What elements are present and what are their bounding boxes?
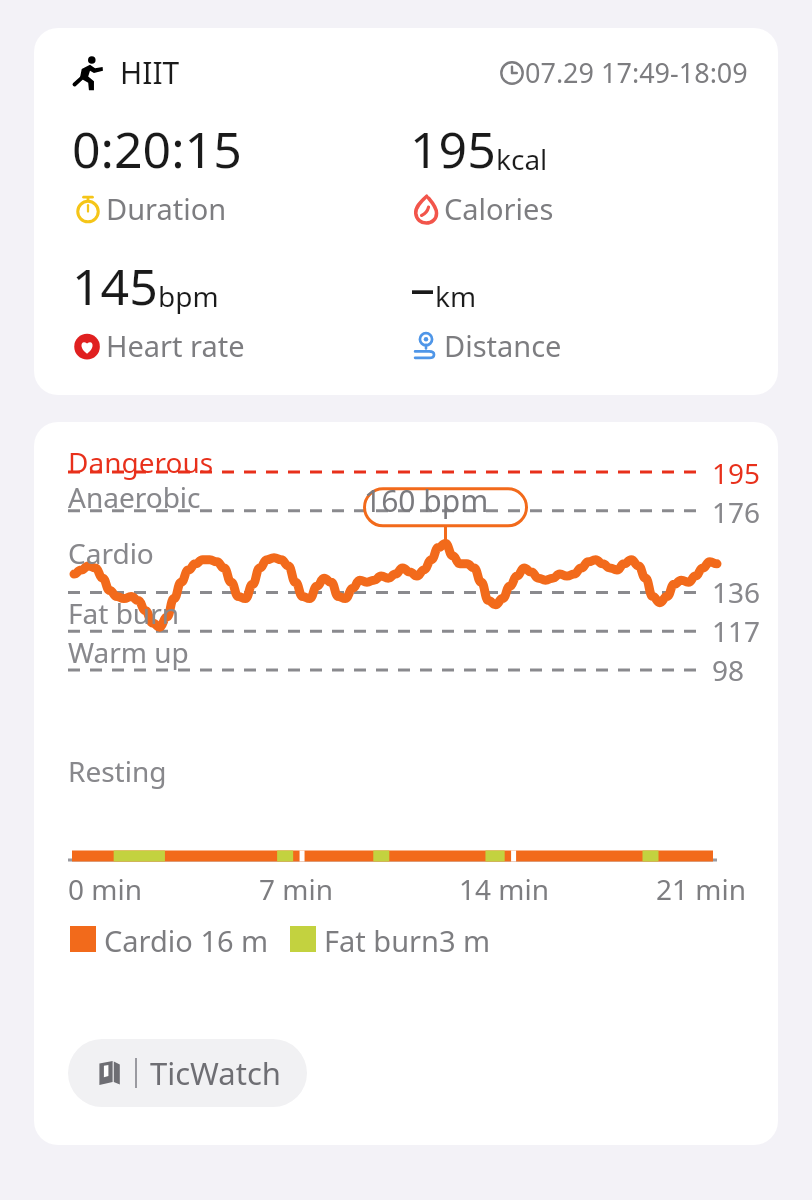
staticText: Calories [444, 189, 554, 228]
staticText: 176 [712, 493, 761, 531]
staticText: kcal [496, 140, 548, 178]
staticText: 07.29 17:49-18:09 [525, 54, 748, 91]
staticText: 160 bpm [364, 480, 489, 521]
button[interactable]: TicWatch [68, 1039, 307, 1107]
staticText: Fat burn [68, 594, 180, 632]
button[interactable]: 145 [72, 252, 410, 365]
staticText: Fat burn3 m [324, 921, 491, 960]
other: TicWatch [94, 1058, 124, 1088]
staticText: HIIT [120, 52, 180, 93]
staticText: 195 [410, 115, 496, 183]
staticText: 14 min [459, 870, 550, 908]
staticText: 145 [72, 252, 158, 320]
button[interactable]: 195 [410, 115, 748, 228]
staticText: Cardio 16 m [104, 921, 269, 960]
staticText: Anaerobic [68, 478, 201, 516]
staticText: Resting [68, 752, 167, 790]
staticText: 136 [712, 573, 761, 611]
staticText: – [410, 252, 435, 320]
other: HIIT workout [72, 55, 108, 91]
staticText: 0 min [68, 870, 143, 908]
staticText: 21 min [656, 870, 747, 908]
staticText: Warm up [68, 633, 189, 671]
staticText: 195 [712, 454, 761, 492]
staticText: Duration [106, 189, 227, 228]
staticText: km [435, 277, 477, 315]
button[interactable]: – [410, 252, 748, 365]
staticText: Distance [444, 326, 562, 365]
staticText: 0:20:15 [72, 115, 242, 183]
staticText: TicWatch [150, 1052, 281, 1094]
staticText: Cardio [68, 534, 154, 572]
staticText: Dangerous [68, 443, 214, 481]
staticText: 7 min [259, 870, 334, 908]
button[interactable]: 0:20:15 [72, 115, 410, 228]
staticText: 98 [712, 651, 745, 689]
staticText: bpm [158, 277, 219, 315]
staticText: Heart rate [106, 326, 245, 365]
staticText: 117 [712, 612, 761, 650]
